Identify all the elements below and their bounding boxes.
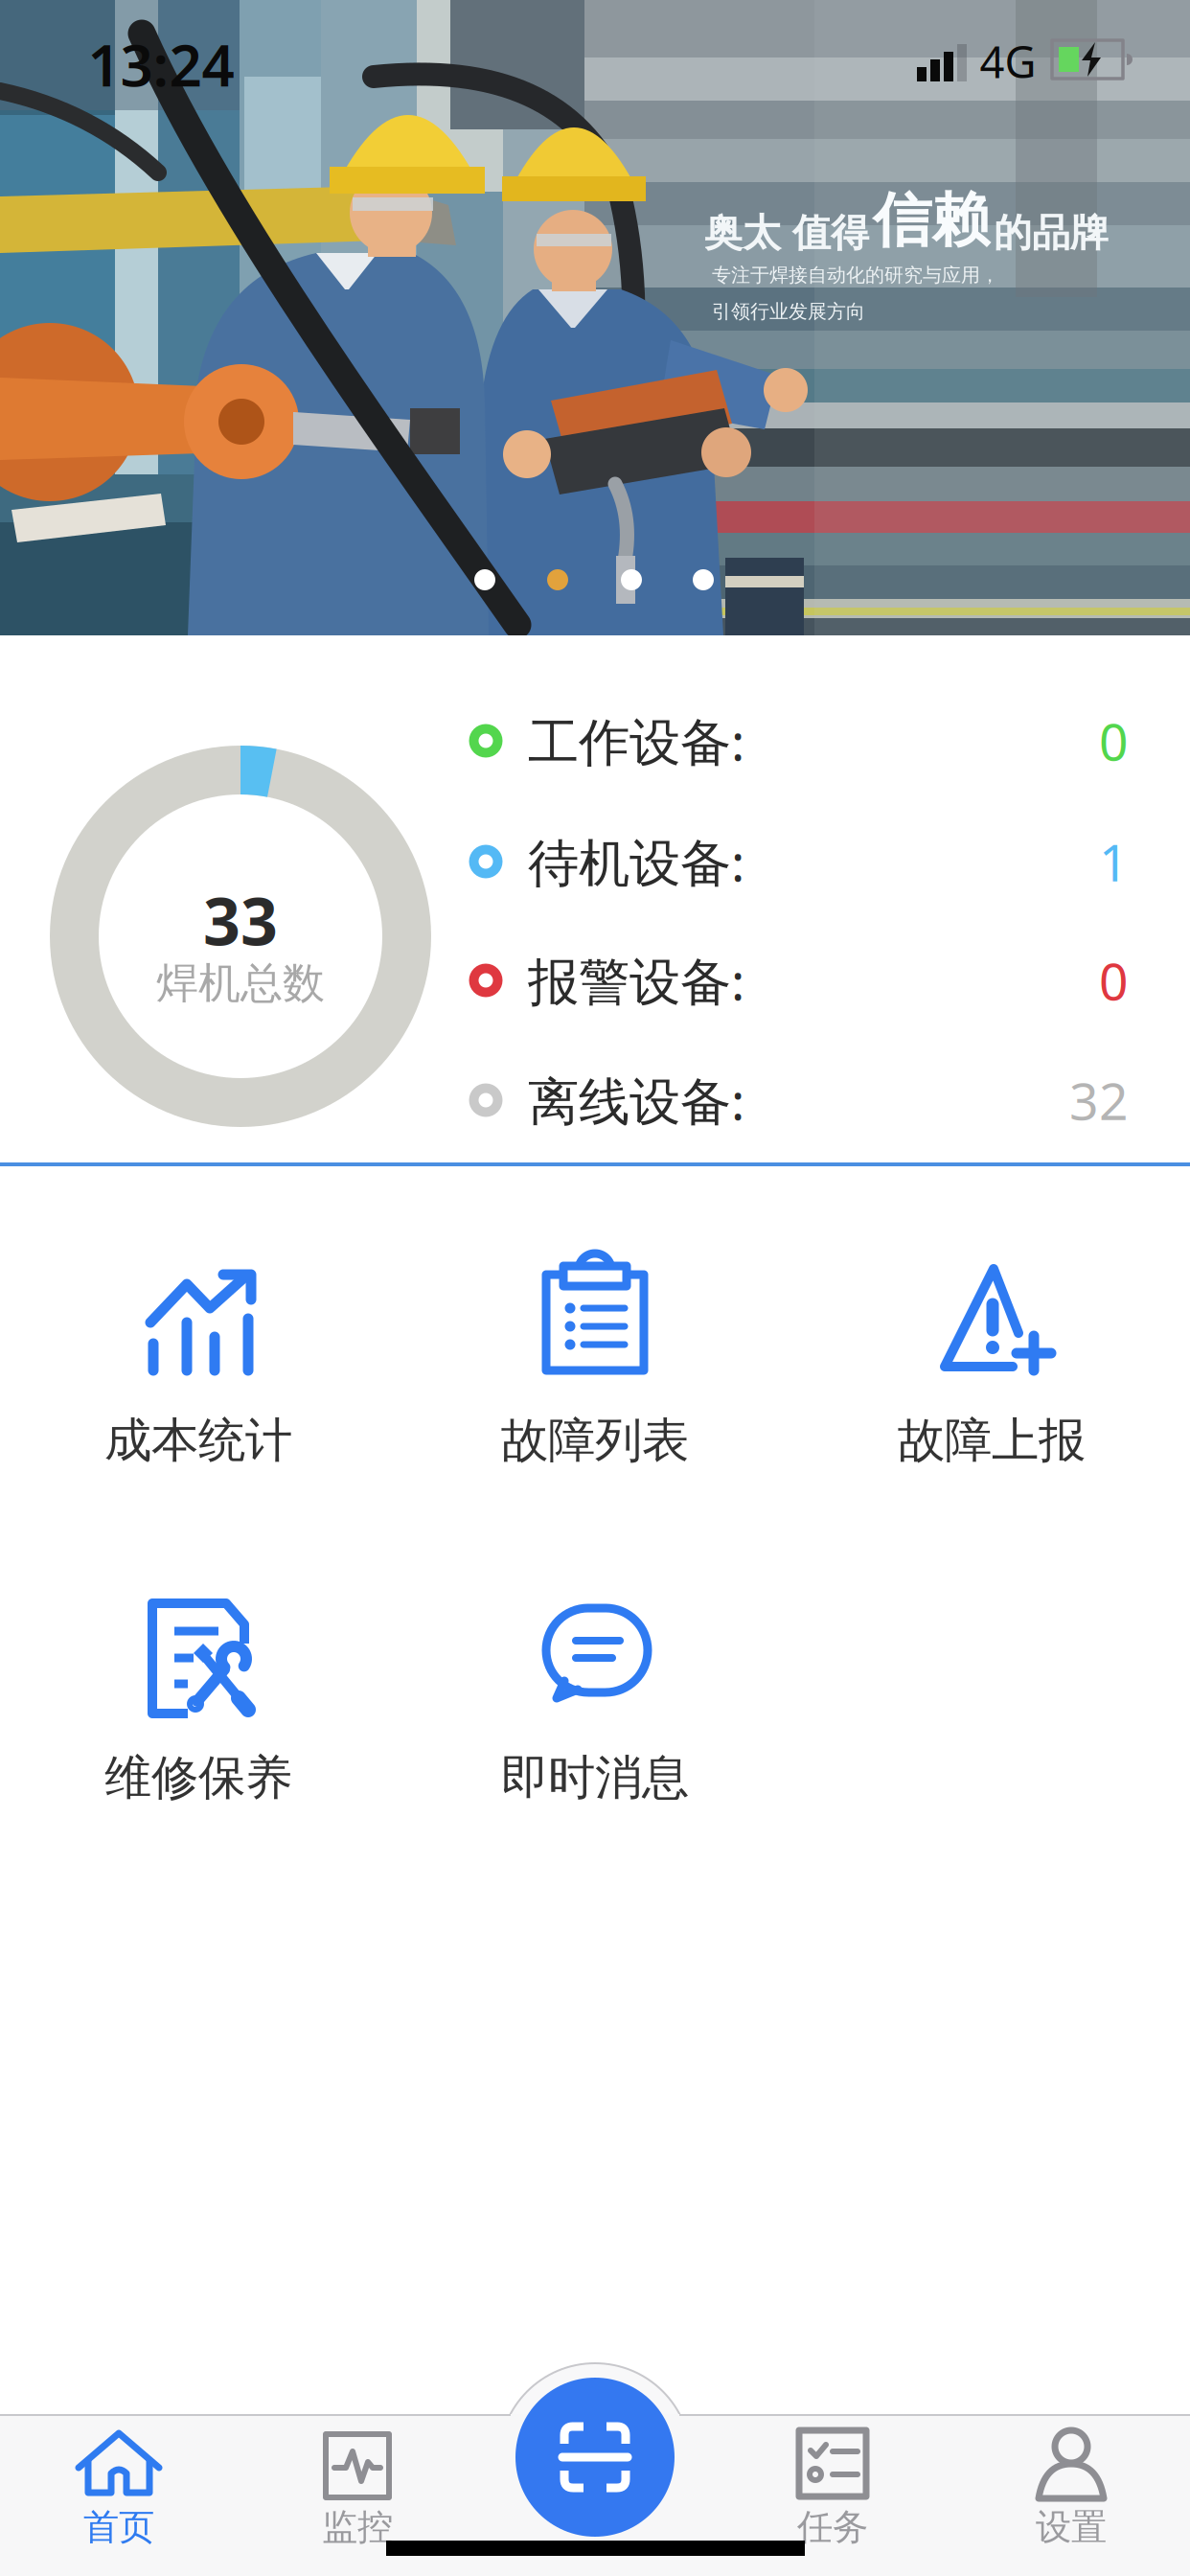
staticText: 首页 xyxy=(83,2505,154,2549)
button[interactable]: 故障列表 xyxy=(413,1246,777,1514)
staticText: 引领行业发展方向 xyxy=(712,300,865,323)
staticText: 监控 xyxy=(322,2505,393,2549)
staticText: 工作设备: xyxy=(528,707,744,775)
staticText: 任务 xyxy=(797,2505,868,2549)
staticText: 奥太 值得 xyxy=(704,209,869,256)
staticText: 设置 xyxy=(1036,2505,1107,2549)
staticText: 33 xyxy=(203,877,278,963)
staticText: 即时消息 xyxy=(501,1749,689,1807)
staticText: 信赖 xyxy=(873,184,990,256)
button[interactable]: 监控 xyxy=(267,2420,447,2554)
button[interactable]: 首页 xyxy=(29,2420,209,2554)
button[interactable]: 成本统计 xyxy=(16,1246,380,1514)
staticText: 焊机总数 xyxy=(156,957,325,1009)
staticText: 1 xyxy=(1099,828,1129,895)
staticText: 故障列表 xyxy=(501,1411,689,1469)
staticText: 维修保养 xyxy=(104,1749,292,1807)
button[interactable]: 扫一扫 xyxy=(499,2361,691,2553)
staticText: 0 xyxy=(1099,707,1129,775)
button[interactable]: 设置 xyxy=(981,2420,1161,2554)
staticText: 报警设备: xyxy=(528,946,744,1014)
staticText: 的品牌 xyxy=(994,209,1109,256)
button[interactable]: 维修保养 xyxy=(16,1583,380,1851)
button[interactable]: 任务 xyxy=(743,2420,923,2554)
staticText: 13:24 xyxy=(88,26,234,102)
staticText: 待机设备: xyxy=(528,828,744,895)
staticText: 成本统计 xyxy=(104,1411,292,1469)
staticText: 4G xyxy=(980,32,1036,90)
staticText: 离线设备: xyxy=(528,1066,744,1134)
button[interactable]: 故障上报 xyxy=(810,1246,1174,1514)
staticText: 32 xyxy=(1069,1066,1129,1134)
staticText: 0 xyxy=(1099,946,1129,1014)
button[interactable]: 即时消息 xyxy=(413,1583,777,1851)
staticText: 故障上报 xyxy=(898,1411,1086,1469)
staticText: 专注于焊接自动化的研究与应用， xyxy=(712,263,999,287)
